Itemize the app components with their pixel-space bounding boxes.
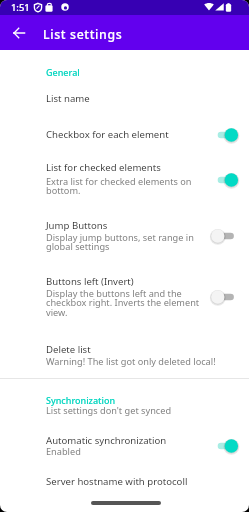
- button[interactable]: Checkbox for each element: [0, 118, 249, 150]
- staticText: List for checked elements: [46, 161, 161, 174]
- staticText: Jump Buttons: [46, 219, 108, 232]
- button[interactable]: List name: [0, 82, 249, 110]
- staticText: Synchronization: [46, 394, 116, 406]
- staticText: List settings: [43, 26, 123, 43]
- staticText: Warning! The list got only deleted local…: [46, 355, 246, 368]
- staticText: General: [46, 66, 80, 78]
- button[interactable]: Automatic synchronization: [0, 424, 249, 464]
- staticText: Automatic synchronization: [46, 434, 167, 447]
- button[interactable]: Delete list: [0, 334, 249, 368]
- button[interactable]: Buttons left (Invert): [0, 266, 249, 322]
- staticText: Server hostname with protocoll: [46, 475, 188, 488]
- staticText: Display jump buttons, set range in globa…: [46, 231, 206, 253]
- staticText: Display the buttons left and the checkbo…: [46, 287, 206, 319]
- staticText: Delete list: [46, 343, 91, 356]
- staticText: Extra list for checked elements on botto…: [46, 175, 206, 197]
- staticText: Checkbox for each element: [46, 128, 169, 141]
- staticText: 1:51: [11, 1, 30, 14]
- button[interactable]: Jump Buttons: [0, 208, 249, 254]
- staticText: Enabled: [46, 445, 206, 458]
- button[interactable]: Back: [6, 20, 31, 45]
- button[interactable]: List for checked elements: [0, 152, 249, 196]
- button[interactable]: Server hostname with protocoll: [0, 466, 249, 494]
- staticText: List name: [46, 92, 90, 105]
- staticText: Buttons left (Invert): [46, 275, 134, 288]
- staticText: List settings don't get synced: [46, 404, 246, 417]
